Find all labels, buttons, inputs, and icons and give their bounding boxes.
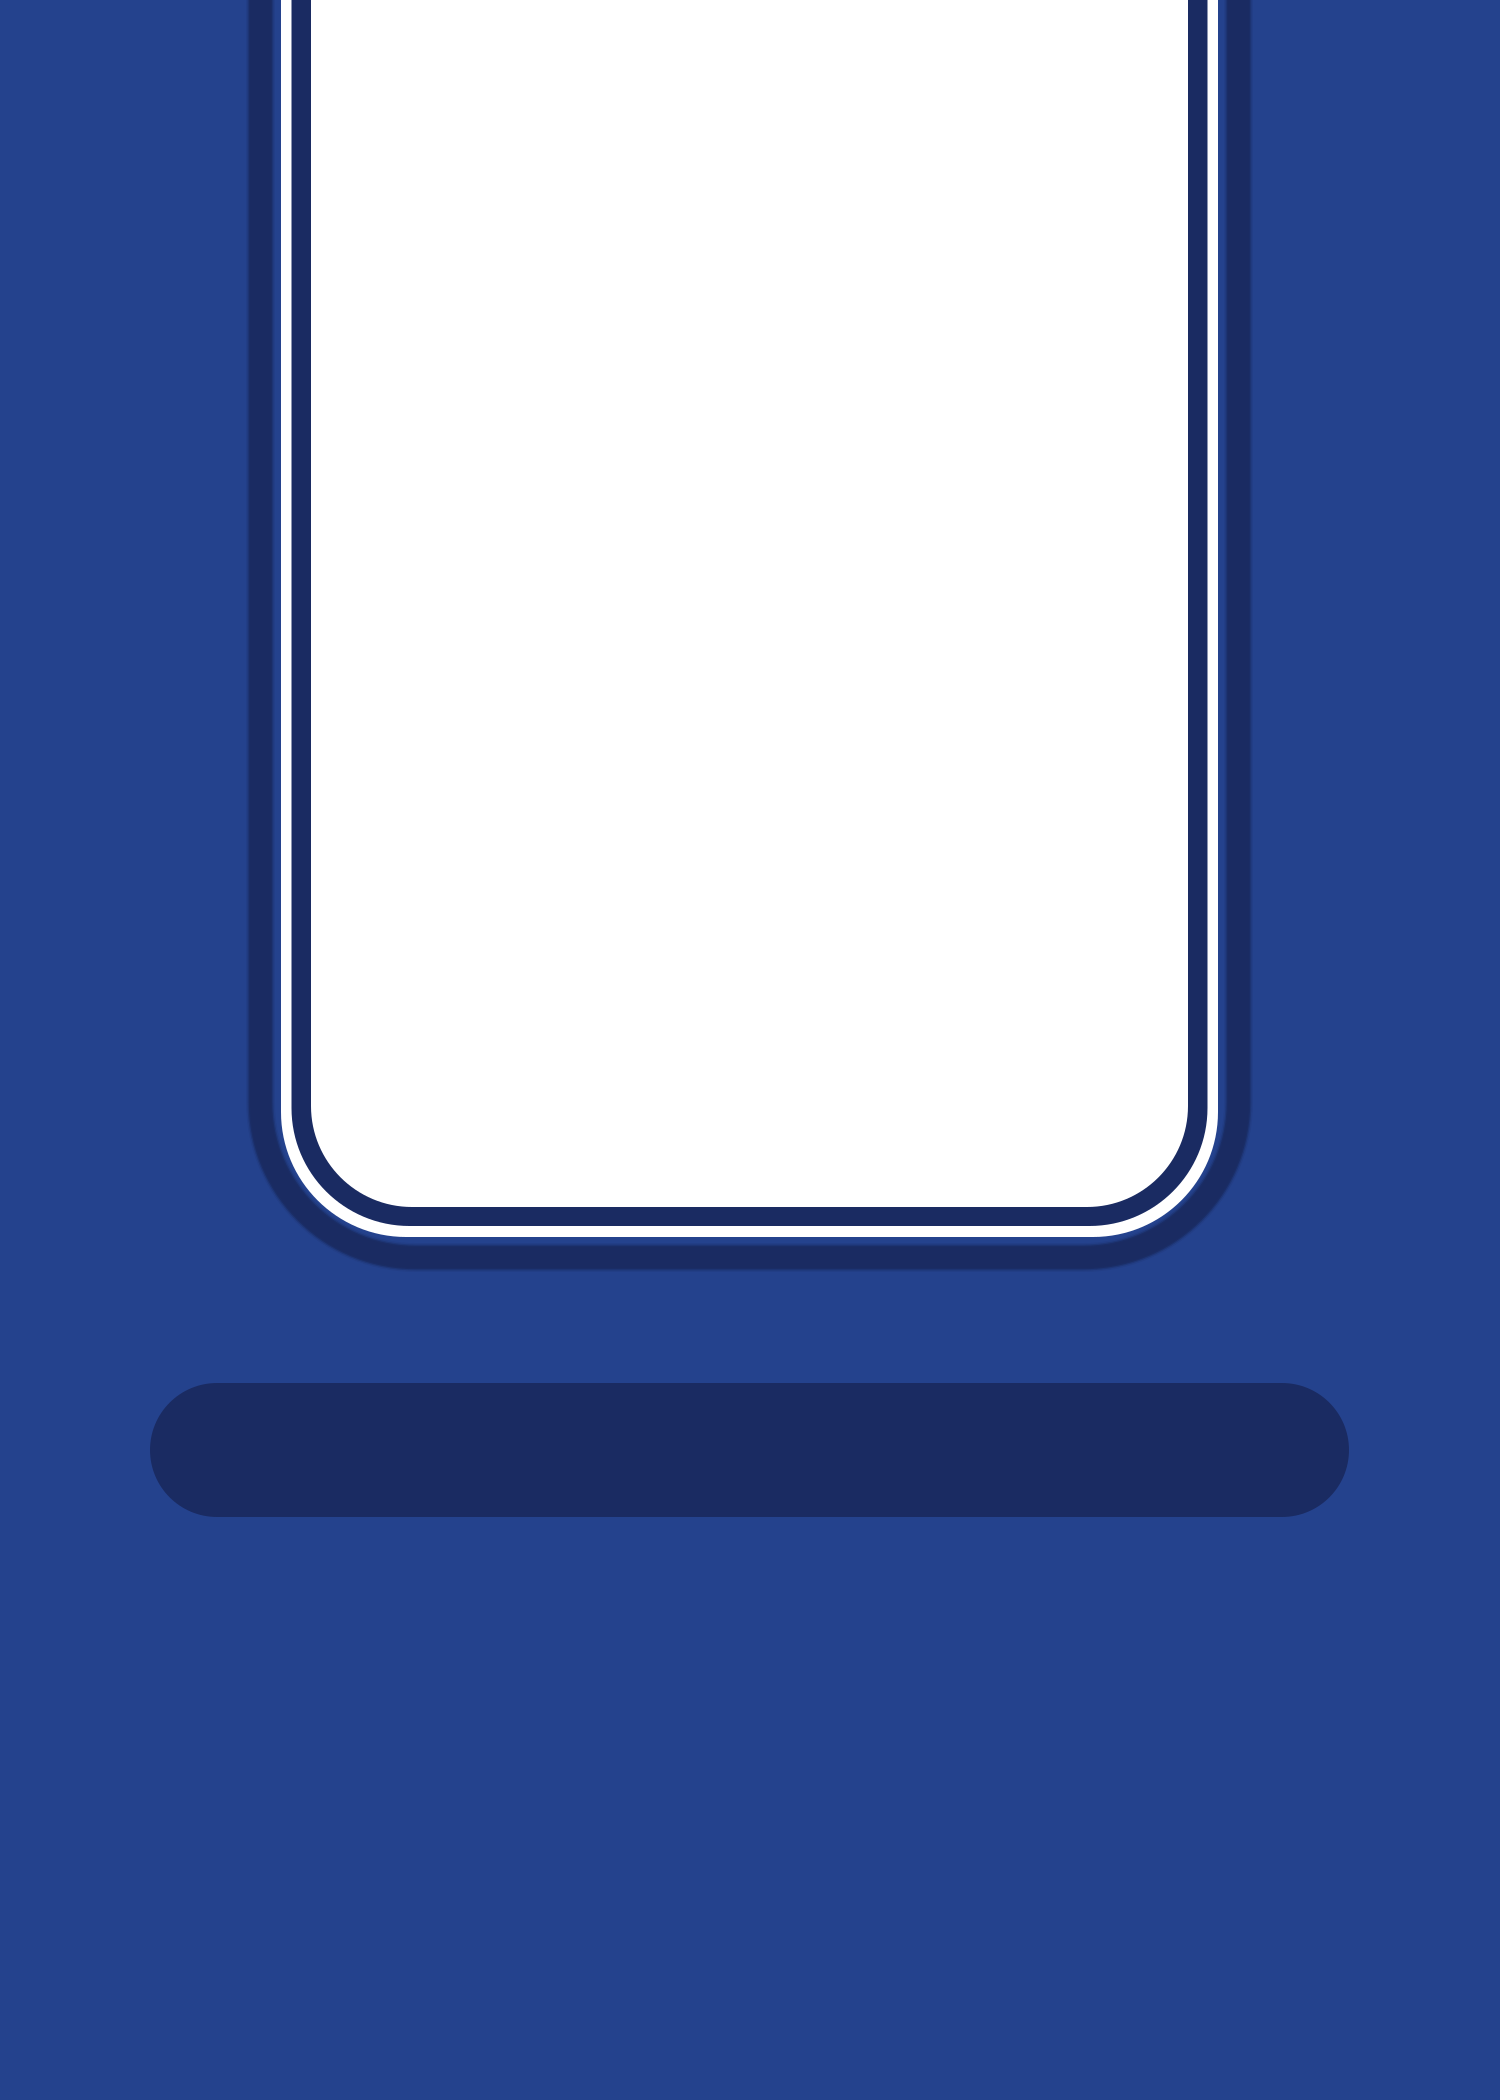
button[interactable]: Loading: [150, 1383, 1349, 1517]
